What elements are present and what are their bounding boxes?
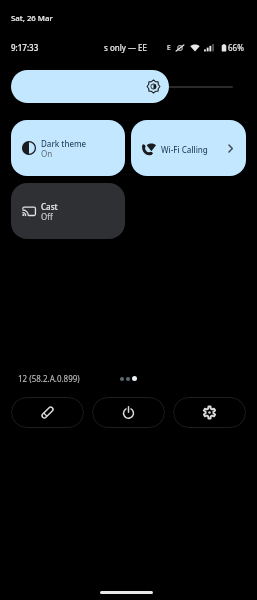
button[interactable]: Dark theme [11,120,125,176]
button[interactable]: Brightness [11,70,169,103]
button[interactable]: Edit [11,397,84,428]
staticText: Off [41,211,53,222]
staticText: Dark theme [41,138,87,149]
staticText: On [41,148,53,159]
button[interactable]: Settings [173,397,246,428]
staticText: Cast [41,201,58,212]
staticText: s only — EE [104,42,147,53]
button[interactable]: Cast [11,183,125,239]
staticText: Sat, 26 Mar [11,13,53,24]
button[interactable]: Power [92,397,165,428]
button[interactable]: Wi-Fi Calling [131,120,246,176]
staticText: E [167,43,171,52]
staticText: Wi-Fi Calling [161,144,208,155]
staticText: 66% [228,42,244,53]
staticText: 12 (58.2.A.0.899) [18,373,80,384]
staticText: 9:17:33 [11,42,39,53]
